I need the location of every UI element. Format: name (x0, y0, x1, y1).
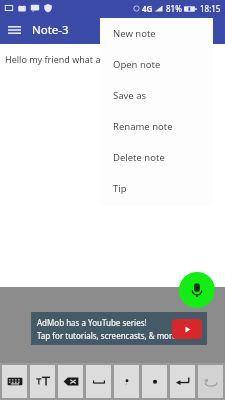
button[interactable]: Period (142, 365, 167, 398)
button[interactable]: New line (170, 365, 195, 398)
button[interactable]: Undo (198, 365, 223, 398)
other: Play video (172, 319, 202, 339)
staticText: Hello my friend what are you doing (5, 53, 154, 65)
button[interactable]: Save as (100, 80, 213, 111)
staticText: Note-3 (32, 22, 69, 38)
button[interactable]: Backspace (58, 365, 83, 398)
staticText: Open note (113, 58, 161, 71)
button[interactable]: Rename note (100, 111, 213, 142)
button[interactable]: Tip (100, 173, 213, 204)
button[interactable]: Voice input (179, 272, 215, 308)
staticText: 18:15 (200, 3, 221, 14)
button[interactable]: Comma (114, 365, 139, 398)
staticText: Save as (113, 89, 147, 102)
button[interactable]: New note (100, 18, 213, 49)
button[interactable]: Space (86, 365, 111, 398)
button[interactable]: Open note (100, 49, 213, 80)
button[interactable]: Delete note (100, 142, 213, 173)
staticText: AdMob has a YouTube series! (37, 317, 147, 328)
staticText: New note (113, 27, 156, 40)
staticText: 4G (142, 3, 153, 14)
staticText: 81% (166, 3, 182, 14)
staticText: Tip (113, 182, 127, 195)
button[interactable]: AdMob has a YouTube series! (31, 312, 207, 345)
staticText: Tap for tutorials, screencasts, & more. (37, 330, 179, 341)
button[interactable]: Show keyboard (2, 365, 27, 398)
button[interactable]: Text size (30, 365, 55, 398)
button[interactable]: Open navigation drawer (0, 16, 28, 44)
staticText: Rename note (113, 120, 173, 133)
staticText: Delete note (113, 151, 165, 164)
